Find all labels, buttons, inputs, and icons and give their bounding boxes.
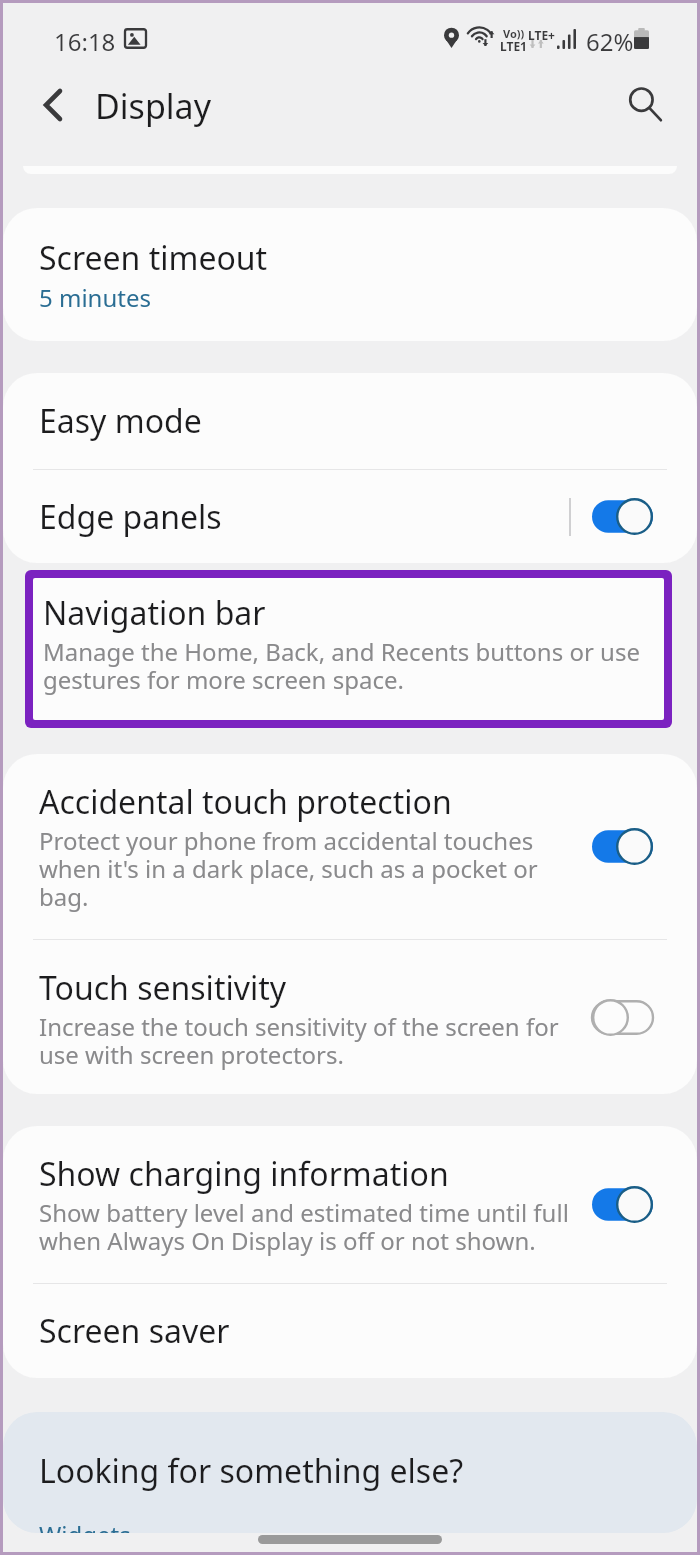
staticText: LTE1 [500,38,527,54]
staticText: Vo)) [503,26,525,41]
staticText: Navigation bar [43,591,266,635]
button[interactable]: Off [592,999,653,1036]
staticText: 62% [586,25,634,58]
staticText: LTE+ [528,27,555,43]
button[interactable]: On [592,828,653,865]
staticText: Widgets [39,1518,131,1533]
button[interactable]: Navigation bar [33,578,664,720]
button[interactable]: On [592,498,653,535]
staticText: Touch sensitivity [39,966,287,1010]
staticText: Screen timeout [39,236,268,280]
staticText: 16:18 [54,25,116,58]
staticText: Show battery level and estimated time un… [39,1196,569,1257]
button[interactable]: Looking for something else? [3,1412,697,1533]
staticText: Manage the Home, Back, and Recents butto… [43,635,656,696]
button[interactable]: Screen saver [3,1284,697,1378]
button[interactable]: On [592,1186,653,1223]
staticText: Screen saver [39,1309,230,1353]
staticText: Protect your phone from accidental touch… [39,824,569,913]
button[interactable]: Touch sensitivity [3,940,697,1094]
staticText: Looking for something else? [39,1449,464,1493]
staticText: Accidental touch protection [39,780,452,824]
staticText: Show charging information [39,1152,449,1196]
staticText: Edge panels [39,495,222,539]
staticText: Increase the touch sensitivity of the sc… [39,1010,569,1071]
button[interactable]: Navigate up [23,75,83,135]
button[interactable]: Show charging information [3,1126,697,1283]
button[interactable]: Search [615,74,675,134]
button[interactable]: Accidental touch protection [3,754,697,939]
button[interactable]: Edge panels [3,470,697,563]
staticText: 5 minutes [39,281,151,314]
button[interactable]: Screen timeout [3,208,697,341]
button[interactable]: Easy mode [3,373,697,469]
staticText: Easy mode [39,399,202,443]
staticText: Display [95,83,211,129]
